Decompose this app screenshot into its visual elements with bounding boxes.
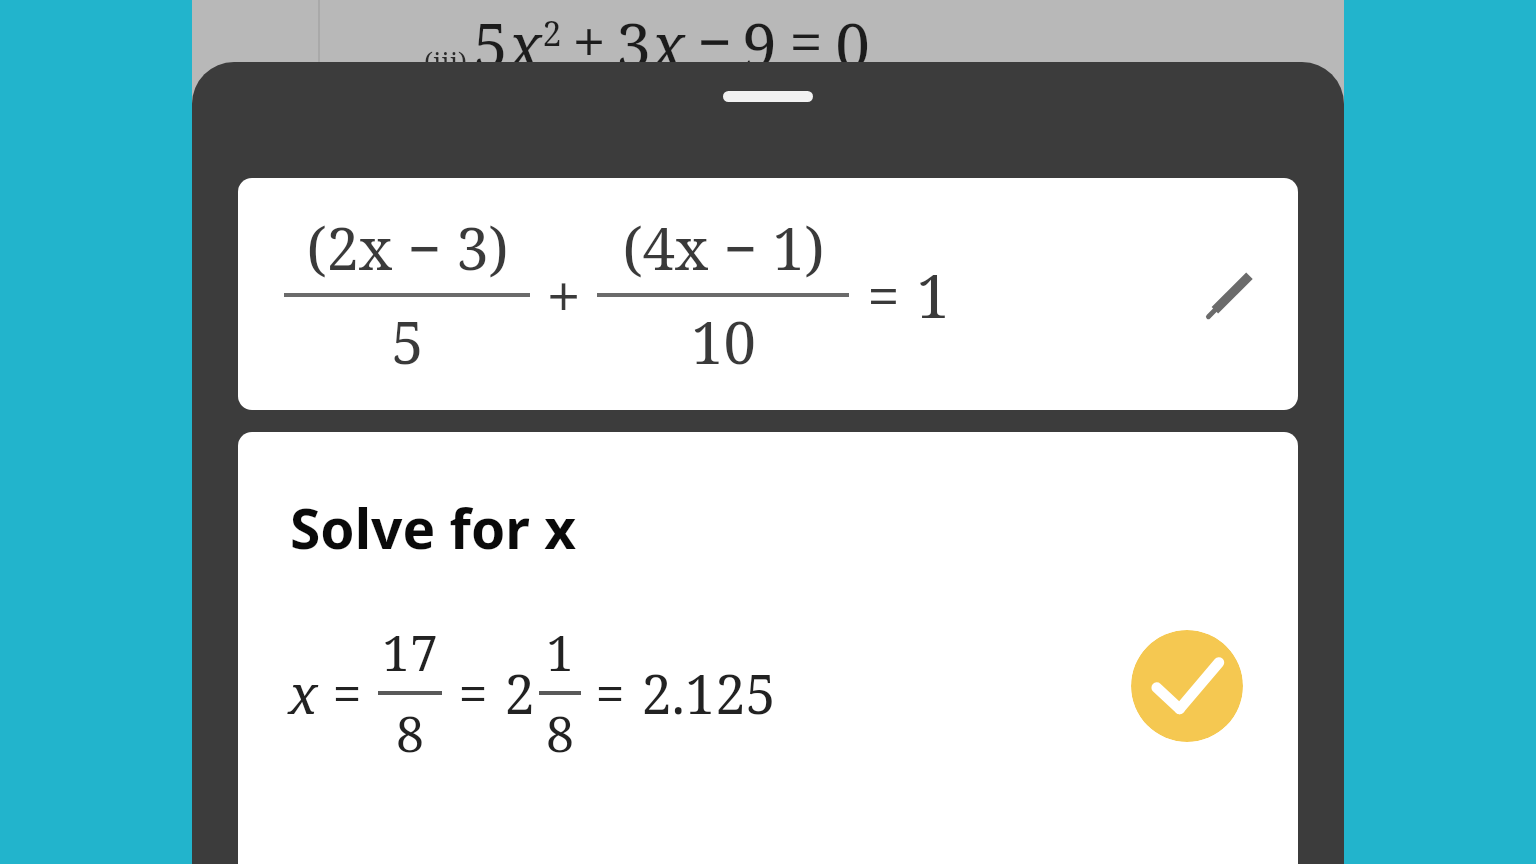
staticText: = [789, 0, 823, 82]
button[interactable]: Solve for x [238, 432, 1298, 864]
staticText: 8 [546, 699, 574, 767]
staticText: 8 [396, 699, 424, 767]
staticText: x [288, 656, 318, 730]
staticText: 10 [691, 302, 756, 381]
button[interactable]: Correct answer [1131, 630, 1243, 742]
staticText: 2 [542, 10, 562, 56]
button[interactable]: Edit equation [1188, 252, 1272, 336]
staticText: = [332, 657, 362, 728]
staticText: 5 [391, 302, 424, 381]
staticText: Solve for x [290, 490, 576, 565]
staticText: − [697, 0, 732, 82]
staticText: = [458, 657, 488, 728]
staticText: x [651, 2, 685, 86]
staticText: (iii) [424, 43, 467, 78]
staticText: 2 [504, 656, 535, 730]
staticText: (2x − 3) [306, 208, 509, 287]
staticText: + [572, 0, 606, 82]
staticText: 2.125 [641, 656, 776, 730]
staticText: 5 [473, 2, 508, 86]
button[interactable]: (2x − 3) [238, 178, 1298, 410]
staticText: 1 [916, 254, 950, 336]
staticText: = [595, 657, 625, 728]
staticText: 17 [382, 618, 438, 686]
staticText: 1 [546, 618, 574, 686]
staticText: x [508, 2, 542, 86]
staticText: = [867, 255, 900, 334]
staticText: 0 [835, 2, 870, 86]
staticText: (4x − 1) [622, 208, 825, 287]
staticText: 3 [616, 2, 651, 86]
staticText: + [546, 253, 581, 337]
staticText: 9 [742, 2, 777, 86]
